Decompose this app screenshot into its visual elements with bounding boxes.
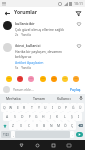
button[interactable]: A bbox=[3, 112, 11, 121]
button[interactable]: ?123 bbox=[1, 131, 11, 138]
button[interactable]: G bbox=[33, 112, 40, 121]
staticText: 10:11 bbox=[74, 1, 83, 6]
button[interactable]: Filter bbox=[74, 9, 82, 17]
button[interactable]: Ö bbox=[62, 121, 69, 130]
staticText: Ü bbox=[79, 105, 82, 110]
staticText: O bbox=[58, 105, 61, 110]
button[interactable]: Ç bbox=[69, 121, 76, 130]
button[interactable]: Like bbox=[76, 43, 82, 49]
staticText: Ö bbox=[64, 123, 67, 128]
button[interactable]: Emoji bbox=[72, 75, 80, 83]
staticText: L bbox=[64, 114, 66, 119]
button[interactable]: Emoji bbox=[50, 75, 58, 83]
staticText: U bbox=[44, 105, 47, 110]
button[interactable]: V bbox=[33, 121, 41, 130]
staticText: G bbox=[35, 114, 38, 119]
button[interactable]: B bbox=[41, 121, 48, 130]
staticText: S bbox=[14, 114, 16, 119]
staticText: #etiket #paylasim bbox=[15, 60, 44, 65]
staticText: I bbox=[52, 105, 54, 110]
button[interactable]: Like bbox=[76, 21, 82, 27]
button[interactable]: Ü bbox=[77, 103, 84, 112]
button[interactable]: X bbox=[17, 121, 25, 130]
staticText: I bbox=[78, 114, 80, 119]
button[interactable]: Q bbox=[1, 103, 7, 112]
button[interactable]: F bbox=[26, 112, 33, 121]
staticText: R bbox=[23, 105, 26, 110]
staticText: , bbox=[13, 133, 14, 137]
staticText: 2s Yanıtla bbox=[15, 33, 31, 37]
button[interactable]: kullanicibir bbox=[0, 18, 85, 40]
button[interactable]: U bbox=[42, 103, 49, 112]
button[interactable]: E bbox=[14, 103, 21, 112]
button[interactable]: Period bbox=[70, 131, 74, 138]
button[interactable]: Emoji bbox=[5, 75, 13, 83]
button[interactable]: Paylaş bbox=[69, 87, 82, 92]
button[interactable]: L bbox=[61, 112, 68, 121]
button[interactable]: W bbox=[7, 103, 14, 112]
staticText: F bbox=[29, 114, 31, 119]
button[interactable]: Recents bbox=[45, 140, 61, 150]
button[interactable]: Ğ bbox=[70, 103, 77, 112]
button[interactable]: M bbox=[55, 121, 62, 130]
button[interactable]: Yorum ekle... bbox=[13, 87, 69, 92]
button[interactable]: C bbox=[25, 121, 33, 130]
staticText: A bbox=[6, 114, 9, 119]
staticText: 5s Yanıtla bbox=[15, 66, 31, 70]
button[interactable]: Comma bbox=[11, 131, 15, 138]
staticText: Kullanıcı bbox=[57, 96, 71, 101]
button[interactable]: Merhaba bbox=[0, 94, 26, 102]
button[interactable]: Ş bbox=[68, 112, 75, 121]
staticText: ikinci_kullanici bbox=[15, 43, 41, 48]
staticText: Çok güzel olmuş ellerine sağlık bbox=[15, 27, 64, 32]
button[interactable]: Home bbox=[29, 140, 45, 150]
button[interactable]: Z bbox=[9, 121, 17, 130]
staticText: H bbox=[42, 114, 45, 119]
button[interactable]: ikinci_kullanici bbox=[0, 40, 85, 73]
button[interactable]: P bbox=[63, 103, 70, 112]
button[interactable]: T bbox=[28, 103, 35, 112]
button[interactable]: J bbox=[47, 112, 54, 121]
button[interactable]: O bbox=[56, 103, 63, 112]
button[interactable]: Emoji bbox=[16, 75, 24, 83]
button[interactable]: Send bbox=[75, 132, 83, 137]
button[interactable]: Back bbox=[13, 140, 29, 150]
staticText: . bbox=[72, 133, 73, 137]
button[interactable]: Emoji bbox=[61, 75, 69, 83]
button[interactable]: Backspace bbox=[76, 121, 84, 130]
button[interactable]: I bbox=[75, 112, 82, 121]
button[interactable]: Emoji bbox=[39, 75, 47, 83]
staticText: W bbox=[9, 105, 13, 110]
staticText: C bbox=[28, 123, 31, 128]
staticText: kullanicibir bbox=[15, 21, 35, 26]
button[interactable]: Emoji bbox=[27, 75, 35, 83]
button[interactable]: S bbox=[11, 112, 19, 121]
staticText: Y bbox=[38, 105, 40, 110]
button[interactable]: Shift bbox=[1, 121, 9, 130]
button[interactable]: Tamam bbox=[26, 94, 51, 102]
button[interactable]: Kullanıcı bbox=[51, 94, 76, 102]
button[interactable]: D bbox=[19, 112, 26, 121]
staticText: Ç bbox=[71, 123, 74, 128]
staticText: Z bbox=[12, 123, 14, 128]
staticText: Ğ bbox=[72, 105, 75, 110]
button[interactable]: I bbox=[49, 103, 56, 112]
button[interactable]: H bbox=[40, 112, 47, 121]
button[interactable]: K bbox=[54, 112, 61, 121]
staticText: B bbox=[43, 123, 46, 128]
button[interactable]: Y bbox=[35, 103, 42, 112]
staticText: ?123 bbox=[3, 133, 9, 137]
staticText: Yorum ekle... bbox=[13, 87, 34, 92]
staticText: V bbox=[36, 123, 39, 128]
staticText: M bbox=[57, 123, 61, 128]
staticText: Harika bir paylaşım, devamını bekliyoruz bbox=[15, 49, 74, 59]
staticText: Q bbox=[3, 105, 6, 110]
button[interactable]: R bbox=[21, 103, 28, 112]
staticText: J bbox=[50, 114, 51, 119]
button[interactable]: Back bbox=[3, 9, 11, 17]
button[interactable]: Voice input bbox=[76, 94, 85, 102]
button[interactable]: Switch keyboard bbox=[61, 140, 77, 150]
staticText: Ş bbox=[71, 114, 73, 119]
button[interactable]: N bbox=[48, 121, 55, 130]
